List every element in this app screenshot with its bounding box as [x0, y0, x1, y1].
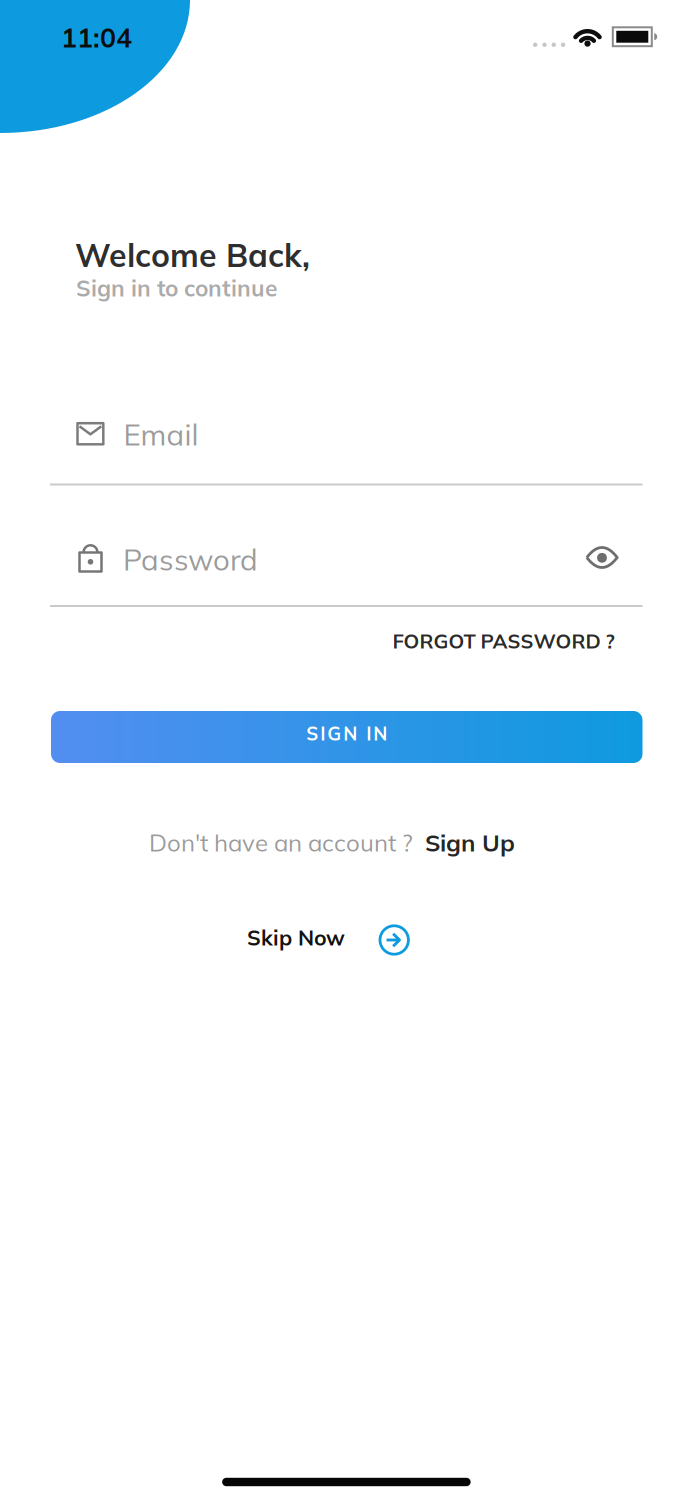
button[interactable]: Show password [580, 539, 624, 575]
button[interactable]: Sign Up [425, 828, 515, 857]
staticText: Sign Up [425, 828, 515, 857]
staticText: Password [123, 542, 258, 577]
staticText: Skip Now [247, 924, 345, 950]
button[interactable]: S I G N I N [51, 711, 642, 763]
staticText: S I G N I N [306, 722, 387, 745]
staticText: Don't have an account ? [149, 828, 413, 857]
staticText: Welcome Back, [75, 235, 310, 275]
button[interactable]: FORGOT PASSWORD ? [392, 629, 614, 653]
staticText: Email [123, 417, 198, 452]
staticText: FORGOT PASSWORD ? [392, 629, 614, 653]
button[interactable]: Skip Now [247, 923, 408, 952]
staticText: 11:04 [61, 21, 132, 54]
staticText: Sign in to continue [76, 274, 277, 302]
